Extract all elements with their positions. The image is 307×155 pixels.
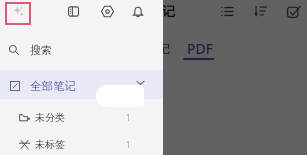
- staticText: 全部笔记: [30, 79, 76, 93]
- button[interactable]: Notifications: [126, 0, 149, 23]
- button[interactable]: Select items: [281, 0, 306, 24]
- button[interactable]: 全部笔记: [0, 72, 163, 100]
- button[interactable]: 未标签: [0, 131, 163, 155]
- button[interactable]: Sort: [248, 0, 273, 23]
- button[interactable]: List view: [215, 0, 240, 23]
- button[interactable]: PDF: [184, 36, 217, 60]
- button[interactable]: 笔记: [145, 36, 171, 60]
- button[interactable]: Settings: [96, 0, 119, 23]
- button[interactable]: 搜索: [0, 39, 163, 61]
- staticText: PDF: [187, 39, 214, 58]
- staticText: 笔记: [149, 3, 175, 19]
- staticText: 搜索: [30, 43, 52, 57]
- staticText: 未分类: [35, 111, 65, 124]
- button[interactable]: 未分类: [0, 104, 163, 130]
- staticText: 1: [126, 112, 131, 123]
- staticText: 未标签: [35, 138, 65, 151]
- button[interactable]: Toggle sidebar: [62, 0, 85, 23]
- staticText: 笔记: [146, 41, 170, 56]
- staticText: 1: [126, 139, 131, 150]
- button[interactable]: AI assistant: [7, 0, 30, 23]
